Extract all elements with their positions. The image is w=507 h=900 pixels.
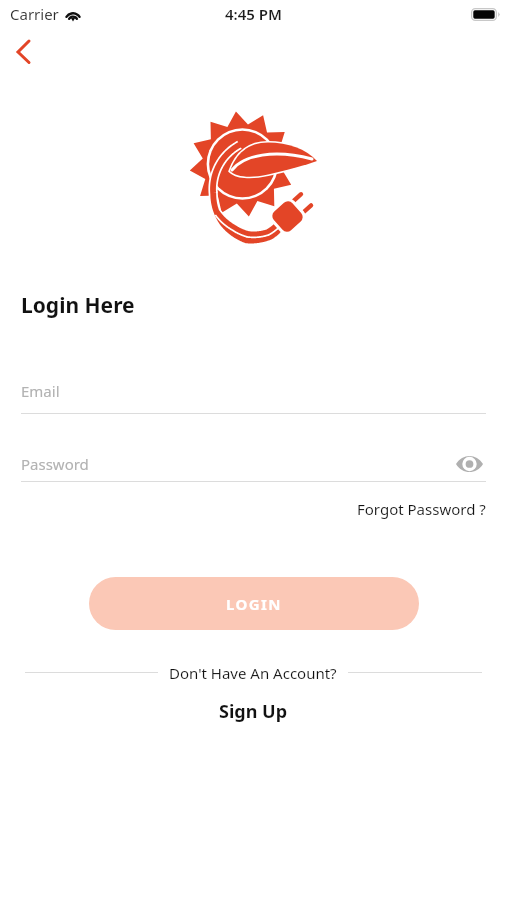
staticText: Sign Up: [219, 699, 288, 724]
staticText: Login Here: [21, 291, 135, 320]
staticText: 4:45 PM: [225, 4, 282, 24]
staticText: Carrier: [10, 4, 59, 24]
button[interactable]: Back: [4, 31, 44, 71]
staticText: LOGIN: [226, 594, 282, 614]
button[interactable]: Password: [21, 447, 486, 482]
staticText: Password: [21, 454, 452, 474]
button[interactable]: Show password: [452, 447, 486, 481]
staticText: Forgot Password ?: [357, 499, 486, 519]
staticText: Email: [21, 381, 60, 401]
button[interactable]: Sign Up: [219, 699, 288, 724]
button[interactable]: Forgot Password ?: [357, 499, 486, 519]
button[interactable]: LOGIN: [89, 577, 419, 630]
button[interactable]: Email: [21, 381, 486, 414]
staticText: Don't Have An Account?: [169, 663, 337, 681]
